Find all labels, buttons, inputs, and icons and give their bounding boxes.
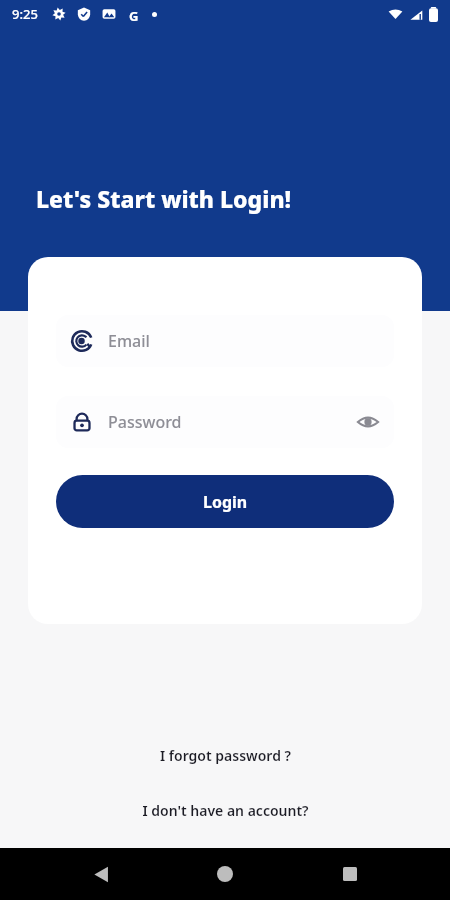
button[interactable]: Password (56, 396, 394, 448)
staticText: G (129, 7, 139, 21)
staticText: I don't have an account? (142, 801, 309, 820)
staticText: Login (203, 491, 248, 513)
staticText: 9:25 (12, 5, 38, 23)
button[interactable]: I forgot password ? (144, 742, 307, 769)
button[interactable]: Recent apps (326, 850, 374, 898)
staticText: Let's Start with Login! (36, 183, 292, 214)
button[interactable]: Show password (356, 410, 380, 434)
staticText: Email (108, 330, 380, 352)
button[interactable]: I don't have an account? (126, 797, 325, 824)
button[interactable]: Back (77, 850, 125, 898)
button[interactable]: Home (201, 850, 249, 898)
button[interactable]: Email (56, 315, 394, 367)
staticText: I forgot password ? (160, 746, 291, 765)
button[interactable]: Login (56, 475, 394, 528)
staticText: Password (108, 411, 356, 433)
